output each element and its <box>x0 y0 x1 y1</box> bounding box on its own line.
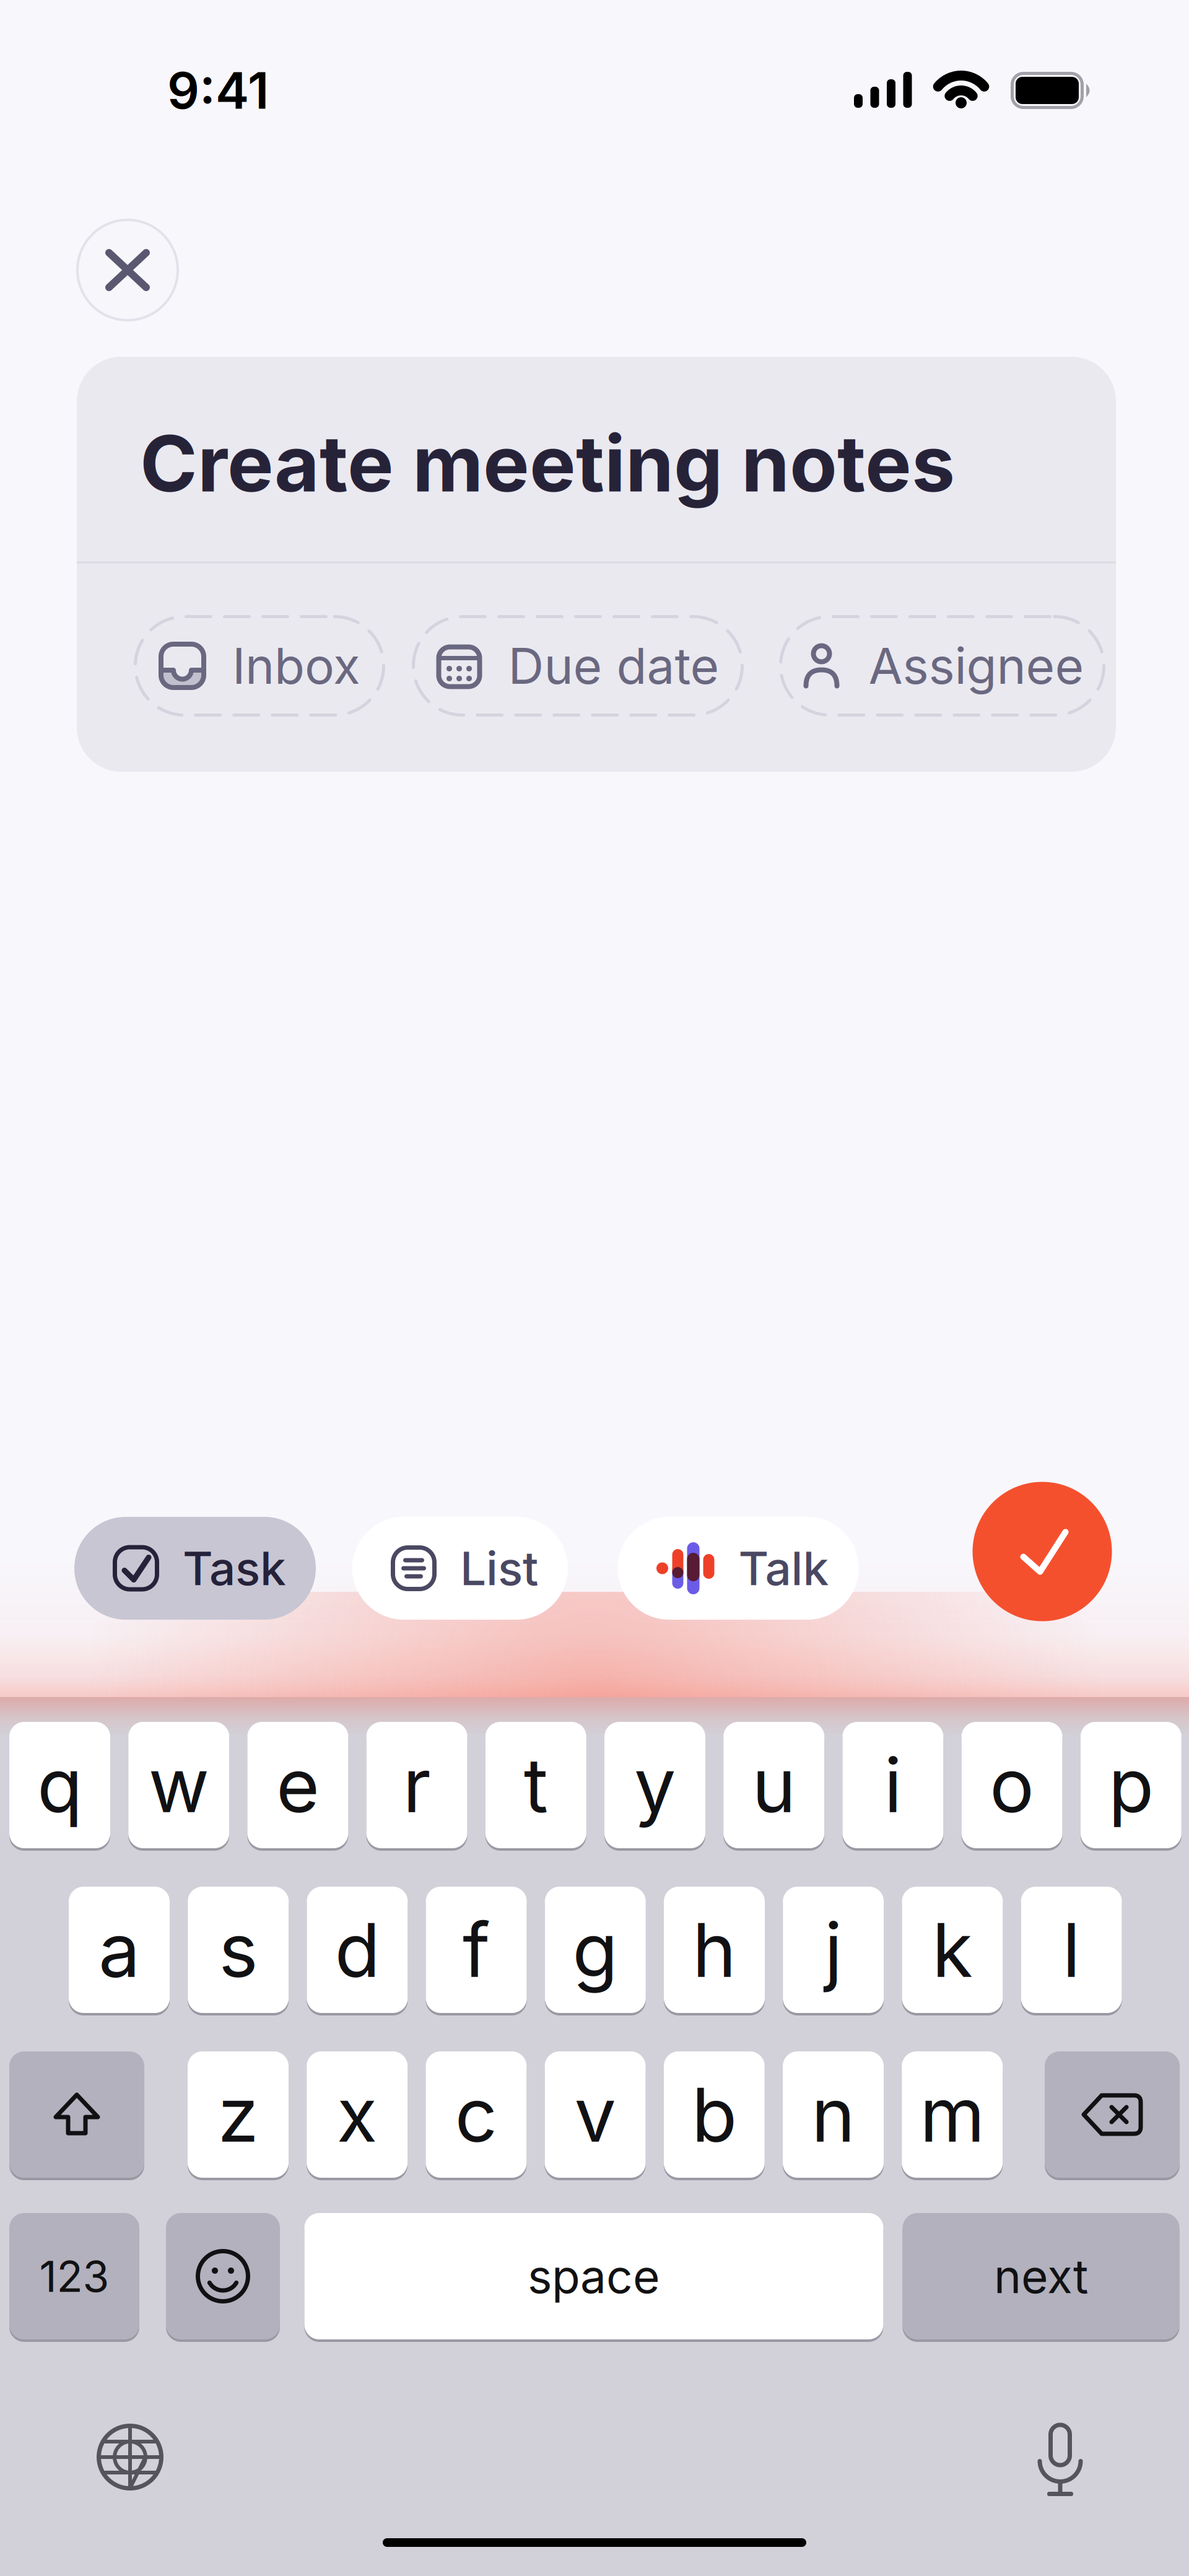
button[interactable]: space <box>304 2213 883 2342</box>
staticText: Task <box>183 1541 286 1596</box>
button[interactable]: f <box>426 1887 527 2015</box>
button[interactable]: s <box>188 1887 289 2015</box>
button[interactable]: Inbox <box>134 615 385 717</box>
staticText: Create meeting notes <box>140 418 955 509</box>
staticText: Inbox <box>232 637 360 695</box>
button[interactable]: Switch keyboard <box>96 2423 164 2491</box>
staticText: l <box>1062 1906 1080 1994</box>
button[interactable]: Dictate <box>1026 2421 1094 2497</box>
staticText: k <box>932 1906 973 1994</box>
staticText: s <box>219 1906 258 1994</box>
button[interactable]: List <box>352 1517 568 1620</box>
button[interactable]: k <box>902 1887 1003 2015</box>
button[interactable]: r <box>366 1722 467 1851</box>
button[interactable]: Emoji <box>166 2213 280 2342</box>
button[interactable]: j <box>783 1887 884 2015</box>
staticText: w <box>148 1741 209 1829</box>
button[interactable]: y <box>604 1722 705 1851</box>
button[interactable]: e <box>247 1722 348 1851</box>
button[interactable]: Shift <box>9 2051 144 2180</box>
staticText: next <box>994 2249 1088 2304</box>
button[interactable]: z <box>188 2051 289 2180</box>
button[interactable]: v <box>545 2051 646 2180</box>
staticText: v <box>574 2071 616 2158</box>
staticText: Talk <box>738 1541 829 1596</box>
staticText: u <box>752 1741 796 1829</box>
button[interactable]: q <box>9 1722 110 1851</box>
button[interactable]: g <box>545 1887 646 2015</box>
button[interactable]: o <box>961 1722 1062 1851</box>
button[interactable]: h <box>664 1887 765 2015</box>
button[interactable]: Due date <box>412 615 744 717</box>
button[interactable]: m <box>902 2051 1003 2180</box>
button[interactable]: t <box>485 1722 586 1851</box>
staticText: Assignee <box>869 637 1084 695</box>
staticText: e <box>276 1741 319 1829</box>
staticText: a <box>98 1906 140 1994</box>
button[interactable]: Close <box>76 219 179 321</box>
button[interactable]: a <box>69 1887 170 2015</box>
button[interactable]: w <box>128 1722 229 1851</box>
staticText: g <box>572 1906 618 1994</box>
button[interactable]: n <box>783 2051 884 2180</box>
button[interactable]: Talk <box>618 1517 859 1620</box>
staticText: r <box>403 1741 431 1829</box>
staticText: c <box>455 2071 498 2158</box>
button[interactable]: i <box>842 1722 943 1851</box>
staticText: j <box>824 1906 842 1994</box>
button[interactable]: next <box>903 2213 1179 2342</box>
staticText: 9:41 <box>167 61 269 120</box>
staticText: y <box>634 1741 676 1829</box>
button[interactable]: c <box>426 2051 527 2180</box>
button[interactable]: x <box>307 2051 408 2180</box>
button[interactable]: 123 <box>9 2213 139 2342</box>
staticText: i <box>884 1741 902 1829</box>
staticText: m <box>920 2071 985 2158</box>
button[interactable]: Task <box>74 1517 316 1620</box>
staticText: n <box>811 2071 855 2158</box>
staticText: p <box>1108 1741 1154 1829</box>
button[interactable]: Save task <box>973 1482 1112 1621</box>
staticText: z <box>218 2071 259 2158</box>
staticText: List <box>460 1541 538 1596</box>
staticText: x <box>337 2071 378 2158</box>
button[interactable]: p <box>1081 1722 1181 1851</box>
staticText: q <box>37 1741 82 1829</box>
staticText: h <box>692 1906 736 1994</box>
button[interactable]: l <box>1021 1887 1122 2015</box>
staticText: b <box>692 2071 737 2158</box>
button[interactable]: Assignee <box>779 615 1105 717</box>
staticText: d <box>335 1906 380 1994</box>
staticText: 123 <box>39 2251 109 2302</box>
button[interactable]: b <box>664 2051 765 2180</box>
staticText: Due date <box>508 637 719 695</box>
staticText: t <box>524 1741 548 1829</box>
staticText: o <box>990 1741 1034 1829</box>
button[interactable]: d <box>307 1887 408 2015</box>
button[interactable]: Delete <box>1045 2051 1180 2180</box>
staticText: space <box>528 2249 660 2304</box>
staticText: f <box>463 1906 490 1994</box>
button[interactable]: u <box>723 1722 824 1851</box>
